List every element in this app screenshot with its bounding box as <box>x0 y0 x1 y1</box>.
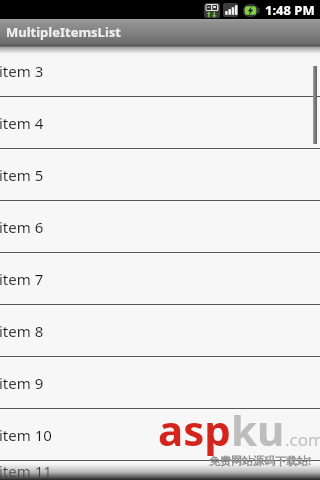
other: Battery charging <box>243 4 260 17</box>
staticText: item 8 <box>0 321 44 341</box>
button[interactable]: item 8 <box>0 305 320 356</box>
staticText: item 9 <box>0 373 44 393</box>
button[interactable]: item 4 <box>0 97 320 148</box>
staticText: 免费网站源码下载站! <box>209 453 312 468</box>
staticText: MultipleItemsList <box>6 23 121 41</box>
staticText: asp <box>158 401 231 458</box>
button[interactable]: item 5 <box>0 149 320 200</box>
other: 3G network <box>204 3 220 18</box>
staticText: item 10 <box>0 425 52 445</box>
other: Signal strength <box>223 3 238 17</box>
staticText: item 3 <box>0 61 44 81</box>
button[interactable]: item 10 <box>0 409 320 460</box>
staticText: item 4 <box>0 113 44 133</box>
staticText: item 5 <box>0 165 44 185</box>
button[interactable]: item 7 <box>0 253 320 304</box>
staticText: .com <box>285 428 320 451</box>
staticText: item 6 <box>0 217 44 237</box>
staticText: ku <box>231 401 285 458</box>
staticText: 1:48 PM <box>265 1 315 19</box>
button[interactable]: item 9 <box>0 357 320 408</box>
staticText: item 11 <box>0 461 52 480</box>
button[interactable]: item 11 <box>0 461 320 480</box>
button[interactable]: item 3 <box>0 45 320 96</box>
staticText: item 7 <box>0 269 44 289</box>
button[interactable]: item 6 <box>0 201 320 252</box>
